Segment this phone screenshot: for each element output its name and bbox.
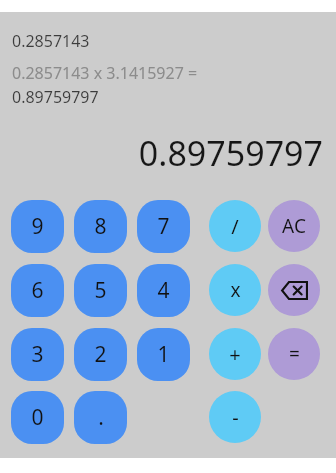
staticText: x — [230, 277, 241, 303]
staticText: 9 — [31, 212, 44, 241]
button[interactable]: 9 — [11, 200, 64, 253]
button[interactable]: 8 — [74, 200, 127, 253]
staticText: AC — [282, 213, 306, 239]
staticText: - — [232, 404, 239, 431]
staticText: 0.2857143 — [12, 30, 90, 52]
staticText: 5 — [94, 276, 107, 305]
staticText: 2 — [94, 340, 107, 369]
button[interactable]: . — [74, 391, 127, 444]
staticText: = — [289, 341, 300, 367]
button[interactable]: Add — [209, 328, 261, 380]
button[interactable]: Backspace — [268, 264, 320, 316]
button[interactable]: Equals — [268, 328, 320, 380]
button[interactable]: Divide — [209, 200, 261, 252]
staticText: 7 — [157, 212, 170, 241]
button[interactable]: 1 — [137, 328, 190, 381]
staticText: 0.89759797 — [12, 86, 99, 108]
staticText: + — [229, 341, 241, 368]
staticText: 8 — [94, 212, 107, 241]
staticText: . — [98, 403, 104, 432]
staticText: 0 — [31, 403, 44, 432]
button[interactable]: 6 — [11, 264, 64, 317]
button[interactable]: 5 — [74, 264, 127, 317]
staticText: / — [231, 213, 239, 240]
button[interactable]: 2 — [74, 328, 127, 381]
button[interactable]: 4 — [137, 264, 190, 317]
button[interactable]: Subtract — [209, 391, 261, 443]
staticText: 1 — [157, 340, 170, 369]
button[interactable]: Multiply — [209, 264, 261, 316]
button[interactable]: 3 — [11, 328, 64, 381]
staticText: 0.89759797 — [0, 130, 323, 176]
staticText: 6 — [31, 276, 44, 305]
button[interactable]: 7 — [137, 200, 190, 253]
staticText: 0.2857143 x 3.1415927 = — [12, 62, 198, 84]
button[interactable]: 0 — [11, 391, 64, 444]
staticText: 4 — [157, 276, 170, 305]
button[interactable]: All clear — [268, 200, 320, 252]
staticText: 3 — [31, 340, 44, 369]
